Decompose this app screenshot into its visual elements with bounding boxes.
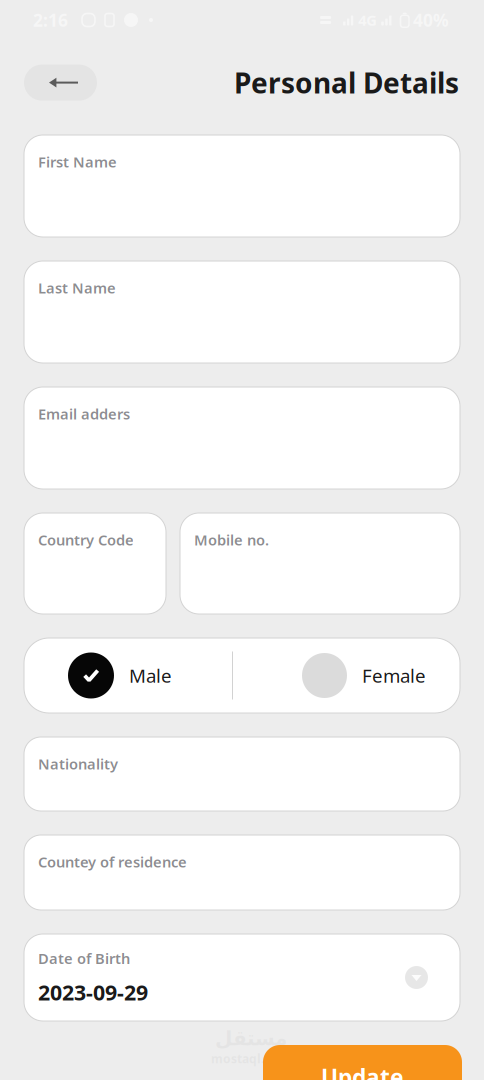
button[interactable]: Date of Birth (24, 934, 460, 1021)
staticText: Date of Birth (38, 949, 130, 968)
staticText: 2023-09-29 (38, 978, 148, 1006)
staticText: Update (321, 1062, 404, 1080)
staticText: Country Code (38, 530, 134, 549)
staticText: مستقل (214, 1027, 286, 1050)
staticText: Female (362, 663, 426, 688)
button[interactable]: Email adders (24, 387, 460, 489)
staticText: First Name (38, 152, 117, 171)
staticText: Male (129, 663, 172, 688)
button[interactable]: Mobile no. (180, 513, 460, 614)
staticText: 4G (358, 10, 377, 30)
button[interactable]: Country Code (24, 513, 166, 614)
button[interactable]: Last Name (24, 261, 460, 363)
button[interactable]: Update (263, 1045, 462, 1080)
staticText: 2:16 (33, 8, 68, 31)
staticText: 40% (413, 8, 449, 31)
staticText: Mobile no. (194, 530, 269, 549)
button[interactable]: First Name (24, 135, 460, 237)
button[interactable]: Female (233, 638, 460, 713)
staticText: Countey of residence (38, 852, 187, 871)
staticText: mostaql.com (211, 1051, 290, 1067)
staticText: Personal Details (234, 64, 459, 101)
staticText: Last Name (38, 278, 116, 297)
button[interactable]: Countey of residence (24, 835, 460, 910)
staticText: Email adders (38, 404, 130, 423)
button[interactable]: Nationality (24, 737, 460, 811)
button[interactable]: Male (24, 639, 232, 712)
button[interactable]: Back (24, 65, 97, 101)
staticText: Nationality (38, 754, 118, 773)
